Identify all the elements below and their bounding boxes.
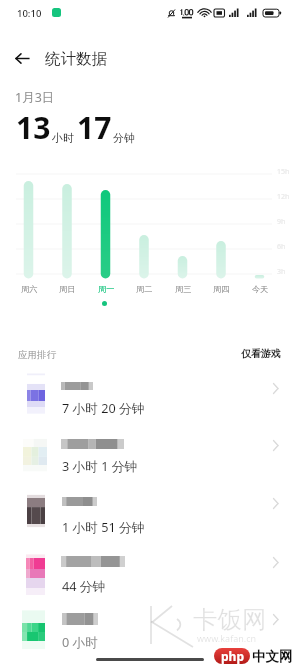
button[interactable]: 7 小时 20 分钟 [0, 370, 300, 428]
staticText: 卡饭网 [193, 604, 267, 635]
staticText: 6h [277, 242, 286, 252]
staticText: 44 分钟 [62, 577, 106, 594]
staticText: 15h [277, 167, 290, 177]
button[interactable]: Back [8, 44, 36, 72]
staticText: 仅看游戏 [241, 347, 281, 360]
button[interactable]: 1 小时 51 分钟 [0, 486, 300, 544]
staticText: 7 小时 20 分钟 [62, 399, 145, 416]
staticText: 统计数据 [45, 49, 107, 69]
staticText: 中文网 [252, 648, 293, 665]
staticText: 1月3日 [15, 89, 55, 106]
staticText: 周六 [21, 284, 38, 294]
staticText: 周日 [59, 284, 76, 294]
staticText: 3 小时 1 分钟 [62, 457, 138, 474]
staticText: 3h [277, 267, 286, 277]
staticText: 0 小时 [62, 633, 98, 650]
staticText: 9h [277, 217, 286, 227]
button[interactable]: 44 分钟 [0, 544, 300, 602]
staticText: 10:10 [17, 7, 42, 20]
staticText: 周二 [136, 284, 153, 294]
button[interactable]: 0 小时 [0, 602, 300, 660]
button[interactable]: 仅看游戏 [241, 347, 281, 360]
staticText: 周四 [213, 284, 230, 294]
staticText: 小时 [52, 131, 74, 145]
staticText: 1 小时 51 分钟 [62, 518, 145, 535]
staticText: 17 [77, 107, 112, 148]
button[interactable]: 3 小时 1 分钟 [0, 428, 300, 486]
staticText: 应用排行 [18, 349, 56, 361]
staticText: php [221, 648, 244, 664]
staticText: 分钟 [113, 131, 135, 145]
staticText: 今天 [252, 284, 269, 294]
staticText: 周一 [98, 284, 115, 294]
staticText: 13 [16, 107, 51, 148]
staticText: 周三 [175, 284, 192, 294]
staticText: 12h [277, 192, 290, 202]
staticText: www.kafan.cn [197, 632, 257, 644]
